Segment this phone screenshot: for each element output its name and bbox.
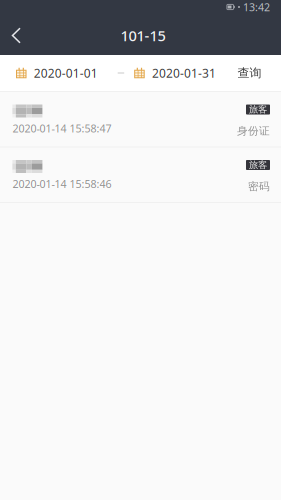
staticText: 2020-01-31	[152, 65, 216, 81]
button[interactable]: 2020-01-01	[0, 57, 118, 89]
staticText: 查询	[237, 66, 261, 80]
staticText: 2020-01-01	[34, 65, 98, 81]
button[interactable]: 查询	[229, 58, 281, 88]
staticText: 旅客	[249, 104, 267, 115]
button[interactable]: 2020-01-14 15:58:47	[0, 92, 281, 147]
staticText: 旅客	[249, 159, 267, 171]
staticText: 密码	[248, 180, 270, 193]
button[interactable]: Back	[0, 16, 34, 53]
staticText: 2020-01-14 15:58:46	[12, 177, 111, 191]
staticText: 13:42	[243, 0, 270, 14]
button[interactable]: 2020-01-31	[124, 57, 216, 89]
staticText: 2020-01-14 15:58:47	[12, 121, 111, 135]
button[interactable]: 2020-01-14 15:58:46	[0, 147, 281, 203]
staticText: 101-15	[120, 26, 165, 45]
staticText: 身份证	[237, 124, 270, 137]
